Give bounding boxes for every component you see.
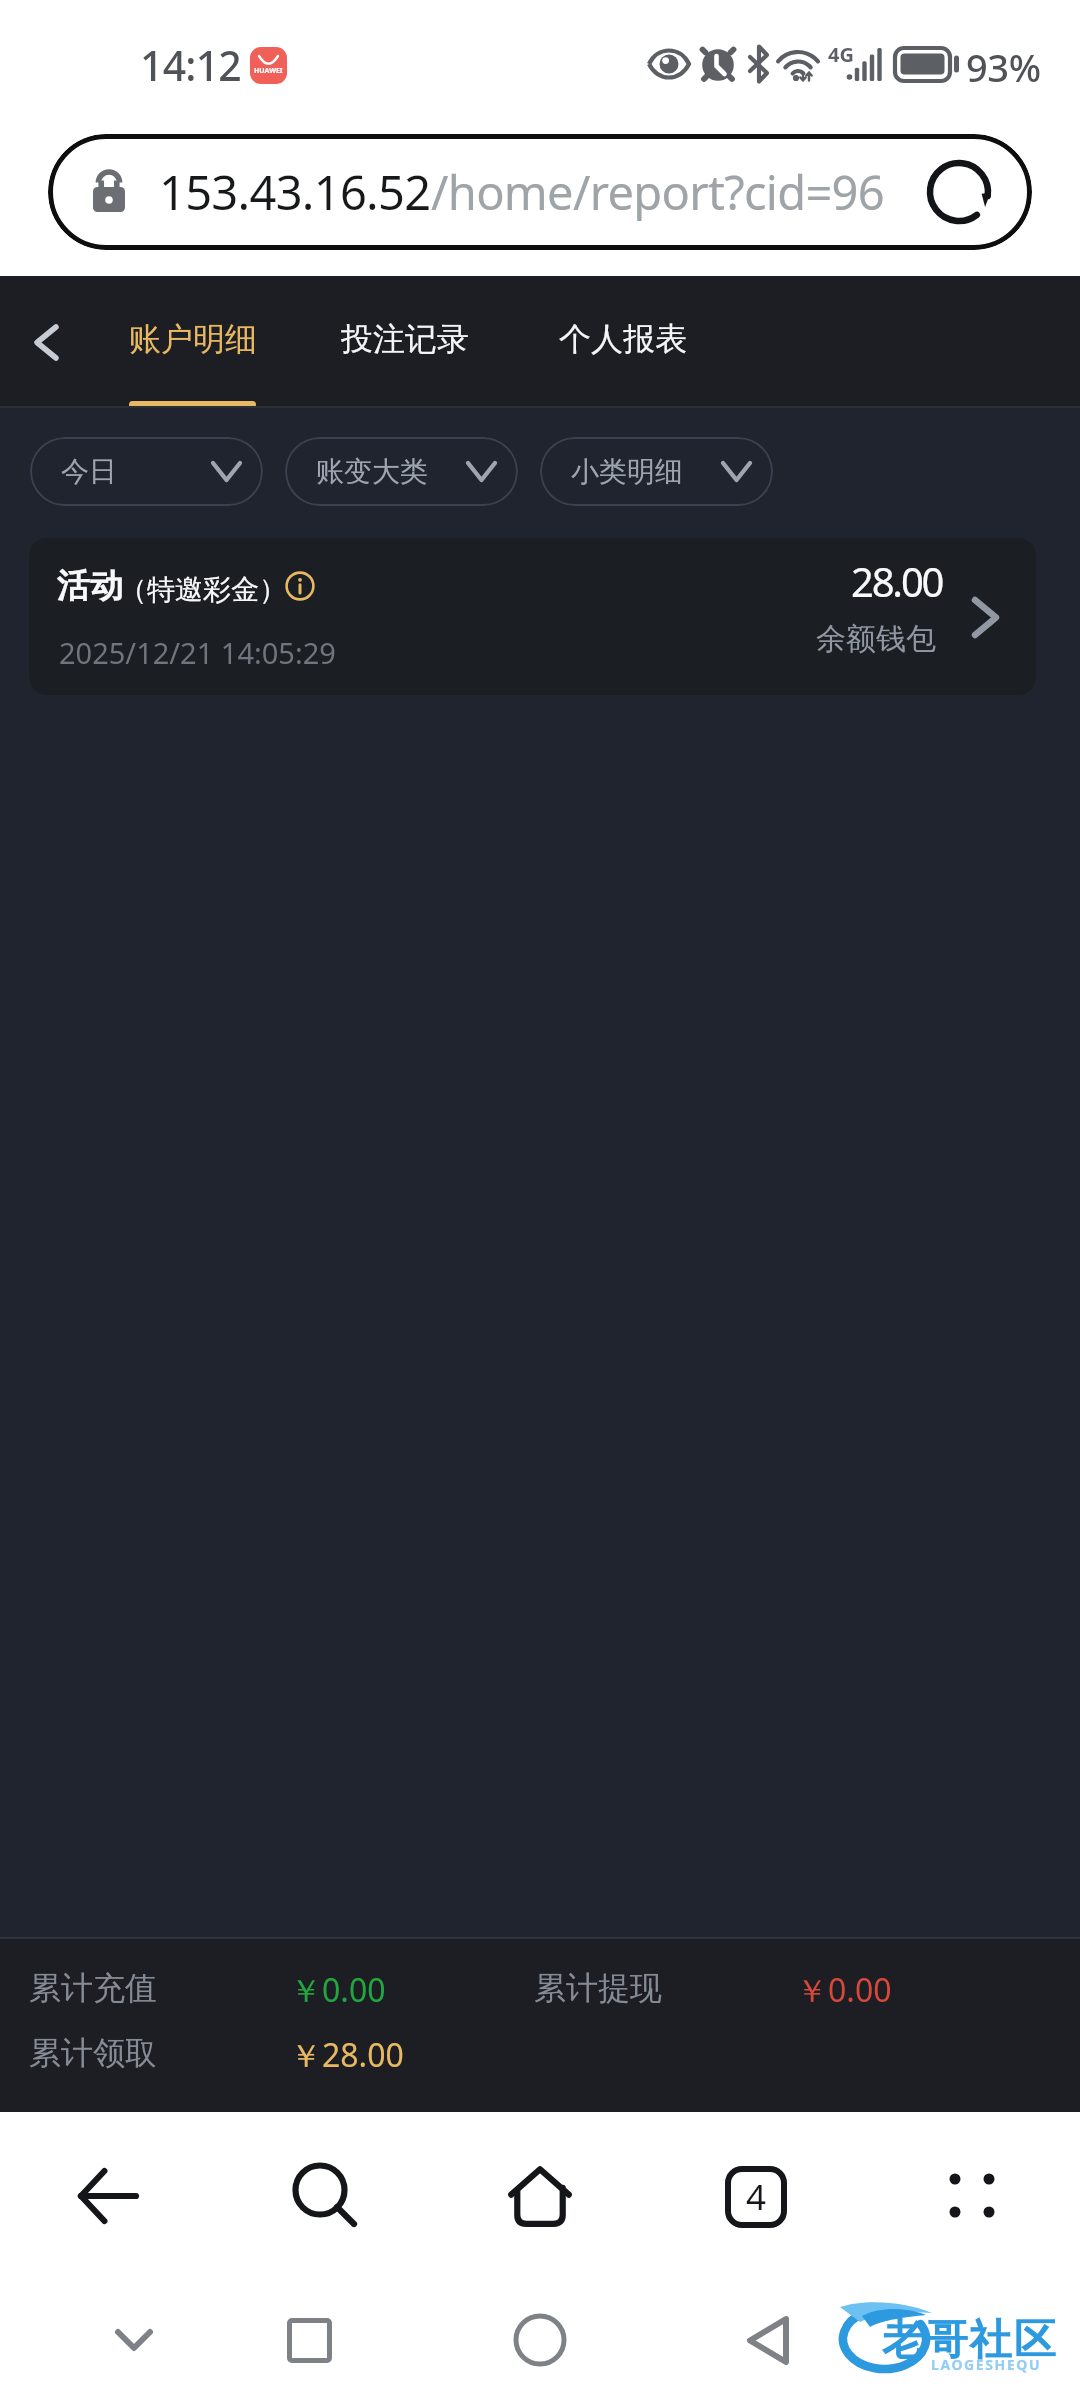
staticText: HUAWEI (254, 66, 283, 76)
staticText: 2025/12/21 14:05:29 (59, 633, 336, 672)
staticText: 28.00 (851, 554, 943, 608)
staticText: 累计提现 (534, 1968, 662, 2008)
staticText: 余额钱包 (816, 620, 936, 658)
staticText: ￥0.00 (796, 1968, 892, 2012)
staticText: 活动 (57, 565, 123, 607)
staticText: 账变大类 (316, 454, 428, 489)
button[interactable]: Home (480, 2280, 600, 2400)
button[interactable]: 今日 (30, 437, 263, 506)
button[interactable]: Menu (888, 2111, 1056, 2279)
button[interactable]: Home (456, 2112, 624, 2280)
staticText: /home/report?cid=96 (431, 160, 884, 224)
button[interactable]: Reload (925, 158, 993, 226)
staticText: 4 (746, 2173, 767, 2221)
button[interactable]: 153.43.16.52 (48, 134, 1032, 250)
button[interactable]: Tabs (672, 2113, 840, 2281)
staticText: LAOGESHEQU (931, 2355, 1042, 2374)
staticText: 今日 (61, 454, 117, 489)
button[interactable]: Recents (249, 2280, 369, 2400)
button[interactable]: 活动 (29, 538, 1036, 695)
button[interactable]: Collapse (74, 2280, 194, 2400)
staticText: 累计领取 (29, 2033, 157, 2073)
staticText: 累计充值 (29, 1968, 157, 2008)
button[interactable]: Search (242, 2112, 410, 2280)
staticText: 14:12 (140, 37, 241, 93)
staticText: 账户明细 (129, 319, 256, 359)
staticText: 小类明细 (571, 454, 683, 489)
button[interactable]: 小类明细 (540, 437, 773, 506)
button[interactable]: Back (24, 2112, 192, 2280)
staticText: 个人报表 (559, 319, 686, 359)
button[interactable]: Back (708, 2280, 828, 2400)
button[interactable]: 账户明细 (129, 276, 256, 406)
staticText: 93% (966, 41, 1041, 93)
staticText: ￥28.00 (290, 2033, 404, 2077)
staticText: （特邀彩金） (119, 572, 287, 607)
button[interactable]: Back (8, 301, 84, 383)
button[interactable]: 个人报表 (559, 276, 686, 406)
staticText: 老哥社区 (882, 2314, 1058, 2367)
staticText: 4G (828, 41, 854, 68)
staticText: 投注记录 (341, 319, 468, 359)
button[interactable]: 账变大类 (285, 437, 518, 506)
staticText: ￥0.00 (290, 1968, 386, 2012)
staticText: 153.43.16.52 (159, 160, 431, 224)
button[interactable]: 投注记录 (341, 276, 468, 406)
